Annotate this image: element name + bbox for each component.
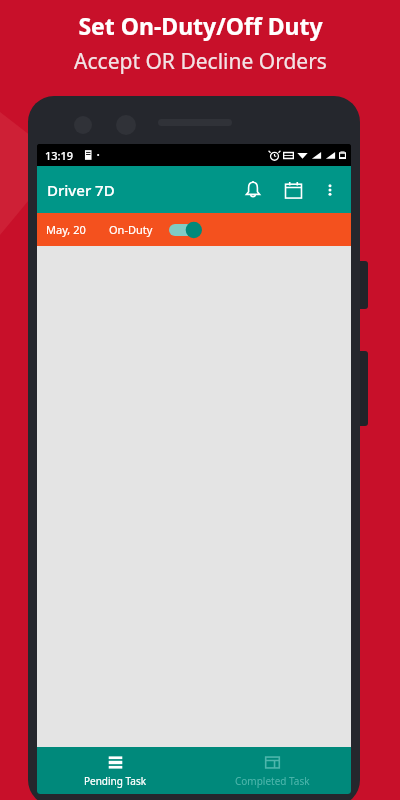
- staticText: 13:19: [45, 148, 74, 163]
- button[interactable]: Notifications: [233, 170, 273, 210]
- staticText: Set On-Duty/Off Duty: [78, 10, 323, 41]
- staticText: May, 20: [46, 222, 86, 237]
- button[interactable]: Pending Task: [37, 747, 194, 794]
- staticText: Pending Task: [84, 774, 147, 788]
- button[interactable]: Completed Task: [194, 747, 351, 794]
- button[interactable]: On Duty toggle: [169, 218, 203, 242]
- staticText: Completed Task: [235, 774, 310, 788]
- staticText: Driver 7D: [47, 180, 115, 200]
- staticText: Accept OR Decline Orders: [74, 47, 327, 76]
- staticText: On-Duty: [109, 222, 153, 237]
- button[interactable]: Calendar: [273, 170, 313, 210]
- button[interactable]: More options: [313, 173, 347, 207]
